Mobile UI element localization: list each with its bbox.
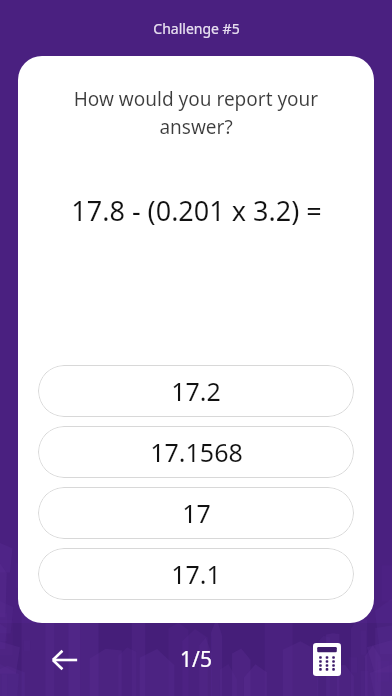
staticText: 17: [182, 496, 211, 530]
staticText: 17.8 - (0.201 x 3.2) =: [71, 192, 322, 229]
button[interactable]: 17.1568: [38, 426, 354, 478]
staticText: 17.2: [171, 374, 221, 408]
button[interactable]: Back: [0, 623, 130, 696]
staticText: 17.1568: [150, 435, 243, 469]
button[interactable]: Calculator: [262, 623, 392, 696]
button[interactable]: 17: [38, 487, 354, 539]
staticText: 1/5: [180, 645, 212, 674]
staticText: Challenge #5: [153, 19, 240, 38]
button[interactable]: 17.1: [38, 548, 354, 600]
staticText: 17.1: [171, 557, 221, 591]
button[interactable]: 17.2: [38, 365, 354, 417]
staticText: How would you report your answer?: [40, 86, 352, 140]
